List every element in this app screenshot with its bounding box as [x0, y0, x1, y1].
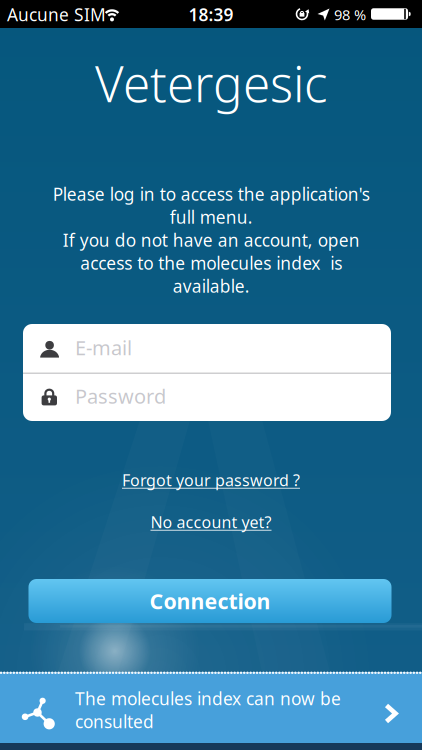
button[interactable]: No account yet?	[150, 511, 271, 533]
staticText: 98 %	[334, 5, 366, 24]
button[interactable]: Forgot your password ?	[122, 469, 300, 491]
staticText: Aucune SIM	[7, 3, 106, 26]
button[interactable]: The molecules index can now be consulted	[0, 0, 422, 750]
staticText: No account yet?	[150, 511, 271, 533]
staticText: E-mail	[75, 334, 132, 361]
staticText: Please log in to access the application'…	[52, 182, 369, 298]
staticText: Connection	[149, 587, 270, 615]
staticText: 18:39	[188, 3, 233, 26]
button[interactable]: Connection	[28, 579, 391, 623]
button[interactable]: Password	[23, 372, 391, 420]
button[interactable]: E-mail	[23, 324, 391, 372]
staticText: Forgot your password ?	[122, 469, 300, 491]
staticText: Vetergesic	[95, 50, 327, 116]
staticText: Password	[75, 383, 166, 409]
staticText: The molecules index can now be consulted	[75, 687, 341, 733]
